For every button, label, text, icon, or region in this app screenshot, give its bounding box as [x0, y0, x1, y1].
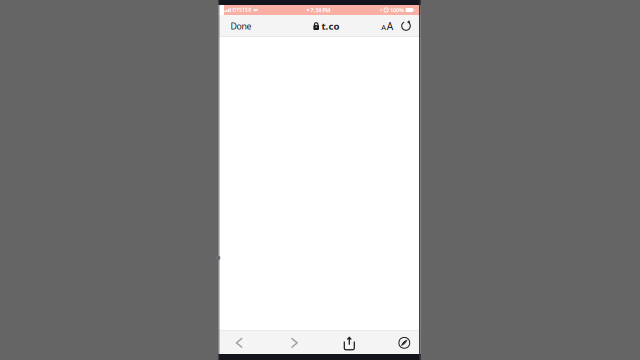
button[interactable]: Back	[227, 331, 251, 355]
staticText: A	[387, 19, 393, 33]
staticText: Done	[230, 20, 251, 32]
staticText: 7:38 PM	[310, 6, 330, 14]
button[interactable]: Text size and page settings	[376, 15, 397, 37]
staticText: 100%	[390, 6, 404, 14]
button[interactable]: Forward	[282, 331, 306, 355]
button[interactable]: Reload	[397, 15, 414, 37]
button[interactable]: Done	[225, 15, 256, 37]
button[interactable]: t.co	[298, 15, 341, 37]
button[interactable]: Share	[337, 331, 361, 355]
staticText: OYSTER	[232, 7, 251, 13]
staticText: A	[381, 22, 386, 32]
button[interactable]: Bookmarks	[392, 331, 416, 355]
staticText: t.co	[322, 19, 340, 33]
